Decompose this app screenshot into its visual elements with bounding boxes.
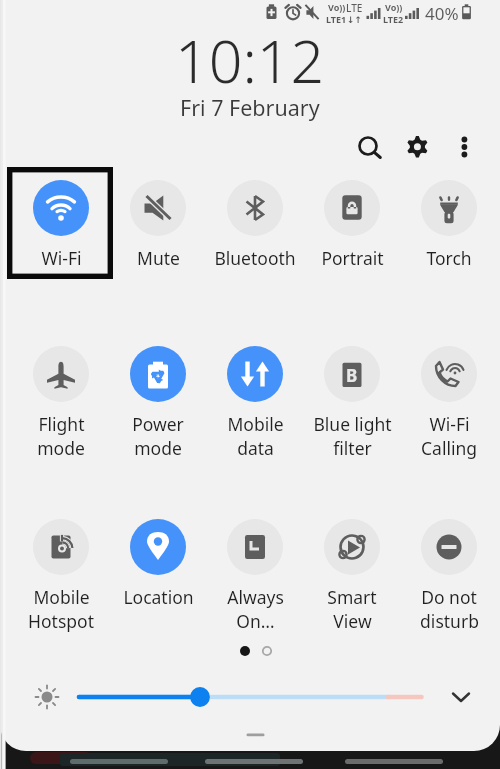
staticText: Smart: [327, 585, 377, 609]
staticText: Always: [227, 585, 284, 609]
staticText: 10:12: [175, 20, 325, 100]
staticText: disturb: [420, 609, 479, 633]
button[interactable]: Power: [112, 337, 204, 460]
staticText: Mobile: [227, 412, 284, 436]
button[interactable]: Flight: [15, 337, 107, 460]
button[interactable]: Mobile: [209, 337, 301, 460]
staticText: LTE1: [326, 13, 347, 25]
staticText: 40%: [425, 2, 459, 25]
staticText: On…: [236, 609, 275, 633]
staticText: LTE2: [383, 13, 404, 25]
button[interactable]: Location: [112, 510, 204, 609]
button[interactable]: Do not: [403, 510, 495, 633]
button[interactable]: B: [306, 337, 398, 460]
staticText: Wi-Fi: [41, 246, 82, 270]
button[interactable]: Portrait: [306, 171, 398, 270]
button[interactable]: Mobile: [15, 510, 107, 633]
button[interactable]: Always: [209, 510, 301, 633]
staticText: Bluetooth: [214, 246, 296, 270]
staticText: Power: [132, 412, 184, 436]
staticText: Portrait: [321, 246, 384, 270]
staticText: Blue light: [313, 412, 392, 436]
staticText: Mobile: [33, 585, 90, 609]
staticText: ↓↑: [347, 15, 363, 25]
staticText: Hotspot: [28, 609, 94, 633]
staticText: Location: [123, 585, 194, 609]
staticText: Flight: [38, 412, 85, 436]
button[interactable]: More options: [444, 127, 484, 167]
staticText: View: [333, 609, 372, 633]
staticText: Mute: [137, 246, 180, 270]
staticText: Do not: [421, 585, 477, 609]
staticText: data: [237, 436, 274, 460]
staticText: filter: [333, 436, 372, 460]
button[interactable]: Mute: [112, 171, 204, 270]
staticText: Vo)): [385, 1, 403, 13]
button[interactable]: Wi-Fi: [15, 171, 107, 270]
staticText: Calling: [421, 436, 477, 460]
button[interactable]: Settings: [397, 127, 437, 167]
staticText: Wi-Fi: [429, 412, 470, 436]
staticText: B: [346, 364, 358, 387]
button[interactable]: Wi-Fi: [403, 337, 495, 460]
button[interactable]: Smart: [306, 510, 398, 633]
staticText: Fri 7 February: [180, 93, 320, 122]
staticText: mode: [37, 436, 85, 460]
button[interactable]: Bluetooth: [209, 171, 301, 270]
staticText: mode: [134, 436, 182, 460]
staticText: Vo)): [328, 1, 346, 13]
staticText: Torch: [426, 246, 472, 270]
button[interactable]: Search: [348, 127, 388, 167]
button[interactable]: Torch: [403, 171, 495, 270]
staticText: LTE: [346, 1, 363, 15]
